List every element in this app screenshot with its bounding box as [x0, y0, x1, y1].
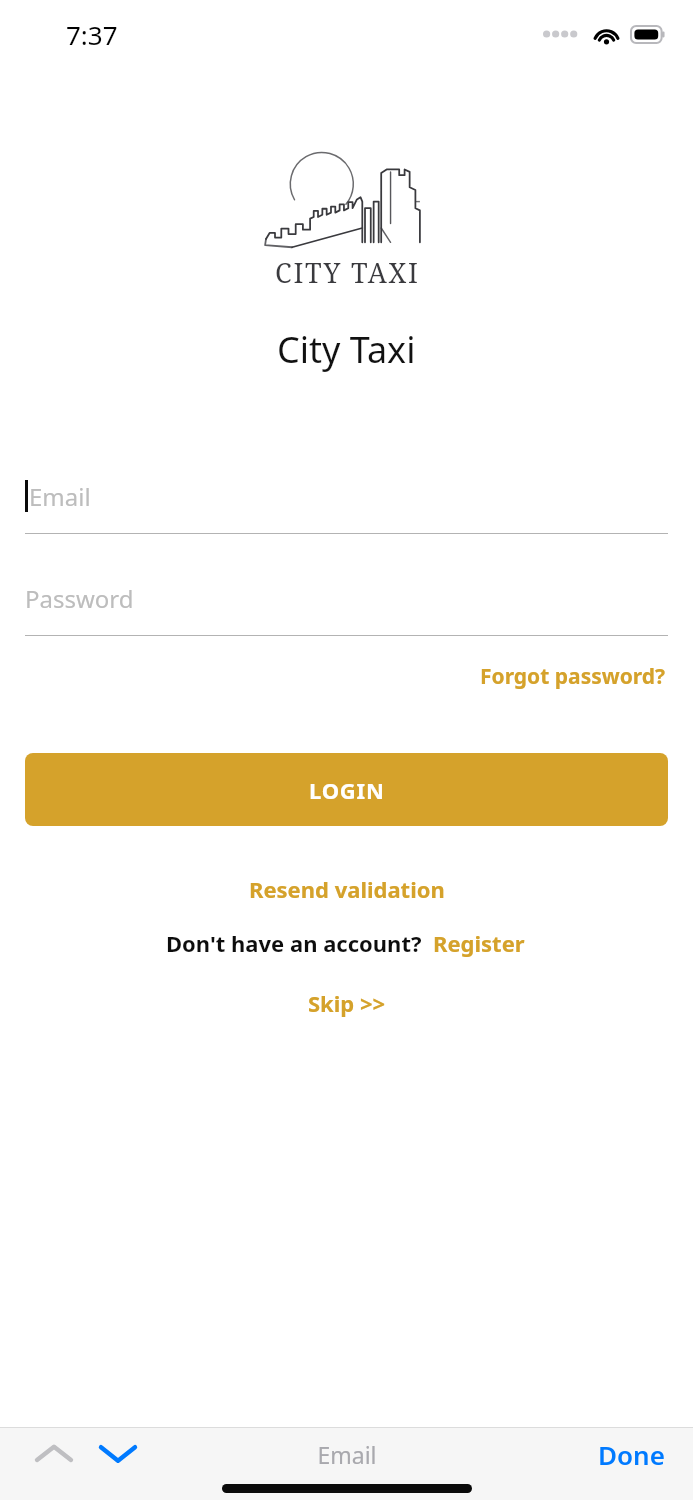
staticText: 7:37 [66, 17, 118, 52]
staticText: Skip >> [308, 988, 386, 1018]
button[interactable]: Email input field [25, 470, 668, 534]
button[interactable]: Previous field [26, 1431, 82, 1477]
button[interactable]: Forgot password? [478, 658, 668, 695]
button[interactable]: LOGIN [25, 753, 668, 826]
staticText: Email [317, 1439, 377, 1470]
staticText: Register [433, 928, 525, 958]
staticText: Password [25, 582, 134, 615]
staticText: LOGIN [309, 775, 385, 805]
staticText: Done [598, 1437, 665, 1472]
staticText: Email [29, 480, 91, 513]
staticText: Resend validation [249, 874, 445, 904]
button[interactable]: Password input field [25, 572, 668, 636]
staticText: City Taxi [277, 325, 416, 374]
staticText: Don't have an account? [166, 928, 422, 958]
staticText: CITY TAXI [275, 254, 420, 291]
button[interactable]: Register [431, 924, 527, 962]
staticText: Forgot password? [480, 662, 666, 691]
button[interactable]: Skip >> [300, 984, 394, 1022]
button[interactable]: Next field [90, 1431, 146, 1477]
button[interactable]: Resend validation [243, 870, 451, 908]
button[interactable]: Done [590, 1431, 673, 1478]
